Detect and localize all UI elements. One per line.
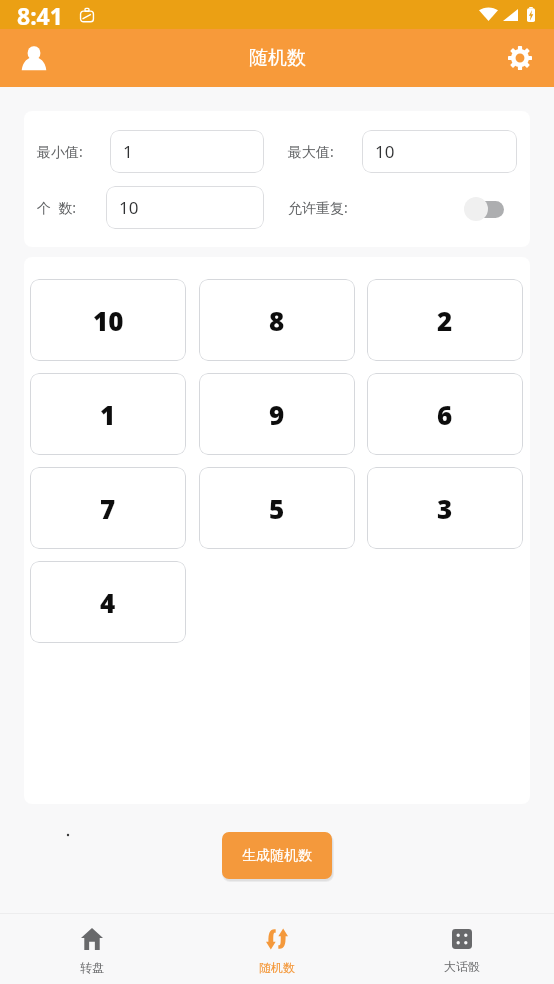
button[interactable]: 1 bbox=[30, 373, 186, 455]
button[interactable]: 随机数 bbox=[184, 914, 369, 984]
button[interactable]: 5 bbox=[199, 467, 355, 549]
button[interactable]: 转盘 bbox=[0, 914, 184, 984]
staticText: 生成随机数 bbox=[242, 847, 312, 865]
staticText: 5 bbox=[269, 491, 285, 526]
staticText: 10 bbox=[119, 196, 139, 219]
staticText: 3 bbox=[437, 491, 453, 526]
staticText: 9 bbox=[269, 397, 285, 432]
staticText: 6 bbox=[437, 397, 453, 432]
button[interactable]: 10 bbox=[30, 279, 186, 361]
staticText: 随机数 bbox=[259, 960, 295, 975]
button[interactable]: 4 bbox=[30, 561, 186, 643]
button[interactable]: 10 bbox=[362, 130, 517, 173]
staticText: 10 bbox=[93, 303, 124, 338]
button[interactable]: 8 bbox=[199, 279, 355, 361]
staticText: 随机数 bbox=[249, 46, 306, 70]
button[interactable]: 2 bbox=[367, 279, 523, 361]
staticText: 1 bbox=[123, 140, 133, 163]
button[interactable]: Profile bbox=[11, 35, 57, 81]
button[interactable]: 7 bbox=[30, 467, 186, 549]
button[interactable]: Allow duplicates bbox=[464, 195, 504, 223]
staticText: 个 数: bbox=[37, 198, 77, 217]
staticText: 大话骰 bbox=[444, 959, 480, 974]
button[interactable]: 6 bbox=[367, 373, 523, 455]
button[interactable]: Settings bbox=[497, 35, 543, 81]
staticText: 转盘 bbox=[80, 960, 104, 975]
button[interactable]: 大话骰 bbox=[369, 914, 554, 984]
staticText: 8 bbox=[269, 303, 285, 338]
staticText: 最大值: bbox=[288, 142, 334, 161]
button[interactable]: 3 bbox=[367, 467, 523, 549]
staticText: 8:41 bbox=[17, 0, 63, 29]
staticText: 4 bbox=[100, 585, 116, 620]
staticText: 2 bbox=[437, 303, 453, 338]
button[interactable]: 10 bbox=[106, 186, 264, 229]
staticText: 7 bbox=[100, 491, 116, 526]
staticText: 允许重复: bbox=[288, 198, 348, 217]
staticText: 1 bbox=[100, 397, 116, 432]
staticText: 10 bbox=[375, 140, 395, 163]
button[interactable]: 9 bbox=[199, 373, 355, 455]
staticText: 最小值: bbox=[37, 142, 83, 161]
button[interactable]: 1 bbox=[110, 130, 264, 173]
button[interactable]: 生成随机数 bbox=[222, 832, 332, 879]
